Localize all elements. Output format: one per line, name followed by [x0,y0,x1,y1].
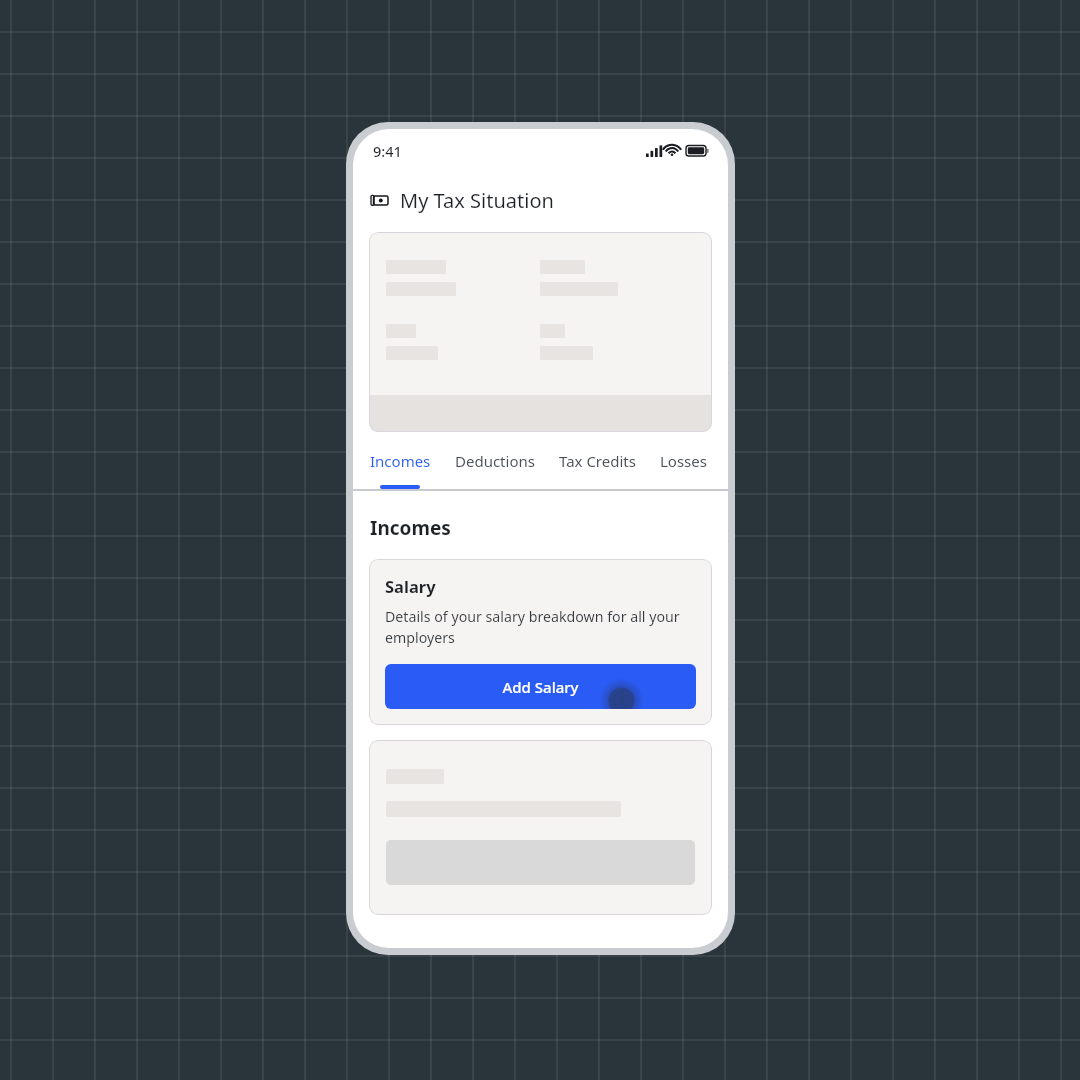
staticText: Salary [385,575,436,597]
other: Money [371,192,388,209]
staticText: My Tax Situation [400,187,554,214]
staticText: Deductions [455,451,535,471]
staticText: 9:41 [373,141,402,161]
button[interactable]: Deductions [455,445,535,477]
button[interactable]: Tax Credits [559,445,636,477]
button[interactable]: Add Salary [385,664,696,709]
staticText: Tax Credits [559,451,636,471]
staticText: Incomes [370,515,451,541]
staticText: Incomes [370,451,431,471]
staticText: Losses [660,451,707,471]
staticText: Details of your salary breakdown for all… [385,607,696,648]
button[interactable]: Incomes [370,445,431,477]
button[interactable]: Losses [660,445,707,477]
staticText: Add Salary [502,677,579,697]
